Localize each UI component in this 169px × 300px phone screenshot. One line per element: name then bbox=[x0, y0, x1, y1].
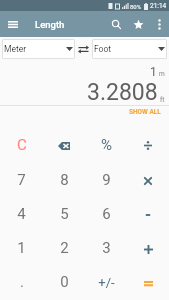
button[interactable]: 3 bbox=[85, 232, 127, 266]
button[interactable]: 4 bbox=[0, 198, 43, 232]
button[interactable]: Open navigation menu bbox=[1, 12, 25, 36]
button[interactable]: 6 bbox=[85, 198, 127, 232]
staticText: m bbox=[159, 70, 165, 78]
button[interactable]: Foot bbox=[92, 39, 167, 59]
staticText: 4 bbox=[17, 205, 26, 223]
button[interactable]: Subtract bbox=[127, 198, 169, 232]
staticText: Meter bbox=[4, 44, 27, 54]
button[interactable]: 2 bbox=[43, 232, 85, 266]
staticText: 3 bbox=[102, 239, 111, 257]
button[interactable]: +/- bbox=[85, 266, 127, 300]
button[interactable]: C bbox=[0, 128, 43, 163]
staticText: Length bbox=[35, 19, 65, 30]
button[interactable]: Backspace bbox=[43, 128, 85, 163]
button[interactable]: Meter bbox=[2, 39, 75, 59]
staticText: % bbox=[101, 136, 112, 154]
button[interactable]: Swap units bbox=[75, 39, 92, 59]
staticText: 5 bbox=[60, 205, 69, 223]
button[interactable]: Search bbox=[105, 13, 127, 35]
button[interactable]: Add bbox=[127, 232, 169, 266]
staticText: 21:14 bbox=[150, 2, 167, 10]
staticText: 0 bbox=[60, 273, 69, 291]
staticText: 7 bbox=[17, 171, 26, 189]
button[interactable]: Add to favorites bbox=[127, 13, 149, 35]
button[interactable]: 7 bbox=[0, 163, 43, 198]
button[interactable]: SHOW ALL bbox=[121, 106, 169, 118]
button[interactable]: 1 bbox=[0, 232, 43, 266]
button[interactable]: 5 bbox=[43, 198, 85, 232]
button[interactable]: More options bbox=[149, 14, 169, 34]
staticText: 80% bbox=[130, 3, 142, 10]
staticText: ft bbox=[160, 96, 165, 104]
button[interactable]: 9 bbox=[85, 163, 127, 198]
staticText: 3.2808 bbox=[87, 79, 158, 106]
staticText: . bbox=[20, 273, 24, 291]
button[interactable]: % bbox=[85, 128, 127, 163]
button[interactable]: Multiply bbox=[127, 163, 169, 198]
button[interactable]: Equals bbox=[127, 266, 169, 300]
button[interactable]: 8 bbox=[43, 163, 85, 198]
staticText: 1 bbox=[17, 239, 26, 257]
staticText: SHOW ALL bbox=[129, 108, 161, 116]
staticText: 6 bbox=[102, 205, 111, 223]
staticText: 1 bbox=[150, 65, 157, 79]
staticText: 8 bbox=[60, 171, 69, 189]
button[interactable]: 0 bbox=[43, 266, 85, 300]
staticText: Foot bbox=[94, 44, 112, 54]
staticText: 9 bbox=[102, 171, 111, 189]
staticText: C bbox=[17, 136, 27, 154]
button[interactable]: Divide bbox=[127, 128, 169, 163]
staticText: +/- bbox=[98, 275, 115, 290]
staticText: 2 bbox=[60, 239, 69, 257]
button[interactable]: . bbox=[0, 266, 43, 300]
